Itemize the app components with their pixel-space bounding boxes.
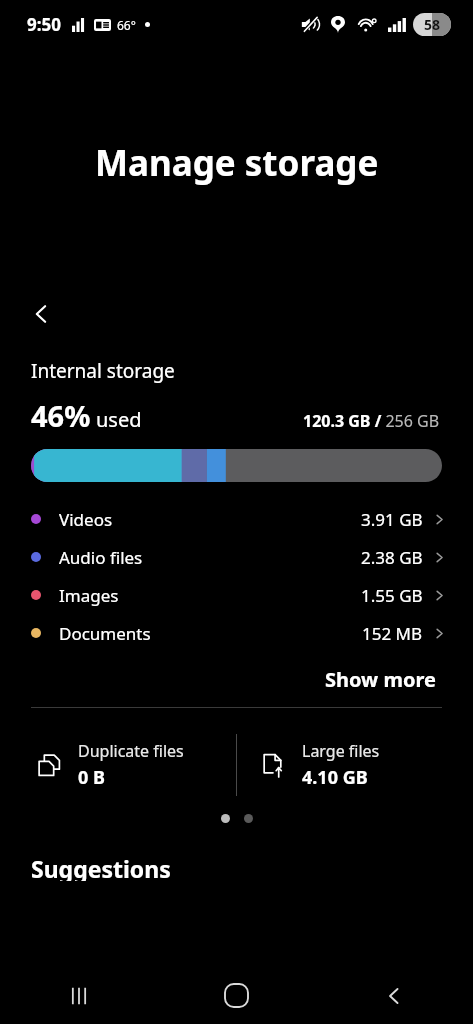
button[interactable]: Documents	[0, 614, 473, 652]
staticText: used	[96, 406, 142, 433]
staticText: Large files	[302, 740, 380, 762]
staticText: Images	[59, 584, 119, 607]
staticText: 1.55 GB	[361, 584, 423, 607]
button[interactable]: Back	[18, 290, 66, 338]
staticText: Manage storage	[95, 139, 379, 187]
staticText: 9:50	[27, 13, 61, 36]
staticText: Videos	[59, 508, 113, 531]
button[interactable]: Large files	[237, 730, 473, 800]
staticText: Documents	[59, 622, 151, 645]
staticText: 66°	[117, 17, 136, 33]
button[interactable]: Recent apps	[0, 967, 157, 1024]
button[interactable]: Audio files	[0, 538, 473, 576]
button[interactable]: Home	[157, 967, 315, 1024]
button[interactable]: Videos	[0, 500, 473, 538]
staticText: Show more	[325, 666, 436, 693]
staticText: Suggestions	[31, 853, 171, 881]
staticText: Duplicate files	[78, 740, 184, 762]
button[interactable]: Back	[315, 967, 473, 1024]
button[interactable]: Images	[0, 576, 473, 614]
staticText: 46%	[31, 396, 91, 435]
staticText: 0 B	[78, 765, 105, 790]
staticText: 120.3 GB / 256 GB	[303, 410, 440, 432]
staticText: 4.10 GB	[302, 765, 368, 790]
staticText: Internal storage	[31, 358, 175, 384]
button[interactable]: Show more	[321, 660, 440, 699]
button[interactable]	[31, 449, 442, 482]
staticText: 3.91 GB	[361, 508, 423, 531]
staticText: Audio files	[59, 546, 143, 569]
staticText: 152 MB	[362, 622, 423, 645]
staticText: 2.38 GB	[361, 546, 423, 569]
staticText: 58	[424, 15, 441, 34]
button[interactable]: Duplicate files	[0, 730, 236, 800]
